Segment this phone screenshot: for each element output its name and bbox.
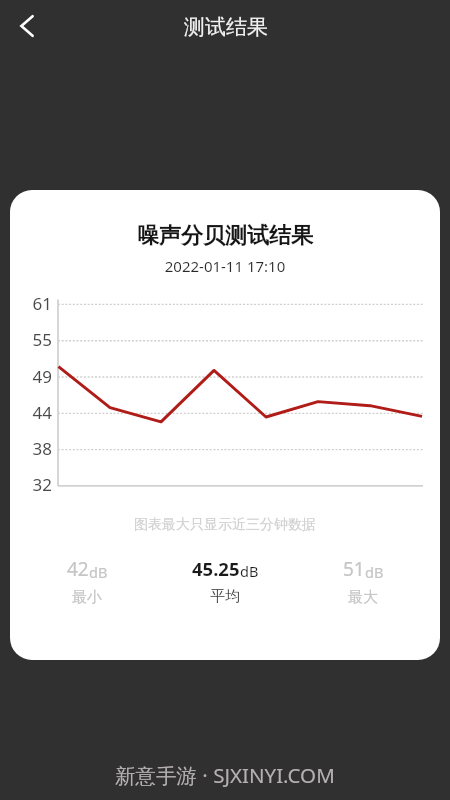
- staticText: dB: [240, 561, 259, 581]
- staticText: 最小: [72, 588, 102, 607]
- staticText: 2022-01-11 17:10: [10, 256, 440, 276]
- staticText: 新意手游 · SJXINYI.COM: [115, 761, 335, 789]
- button[interactable]: Back: [3, 2, 51, 50]
- staticText: 测试结果: [184, 14, 268, 40]
- staticText: 55: [10, 328, 52, 351]
- staticText: 45.25: [192, 556, 240, 581]
- staticText: 平均: [210, 587, 240, 606]
- staticText: 42: [67, 556, 89, 582]
- staticText: 38: [10, 437, 52, 460]
- staticText: 图表最大只显示近三分钟数据: [10, 516, 440, 534]
- staticText: dB: [365, 562, 384, 582]
- staticText: 噪声分贝测试结果: [10, 222, 440, 250]
- staticText: 最大: [348, 588, 378, 607]
- staticText: 32: [10, 473, 52, 496]
- staticText: 51: [343, 556, 365, 582]
- staticText: 44: [10, 401, 52, 424]
- staticText: 61: [10, 292, 52, 315]
- staticText: dB: [89, 562, 108, 582]
- staticText: 49: [10, 365, 52, 388]
